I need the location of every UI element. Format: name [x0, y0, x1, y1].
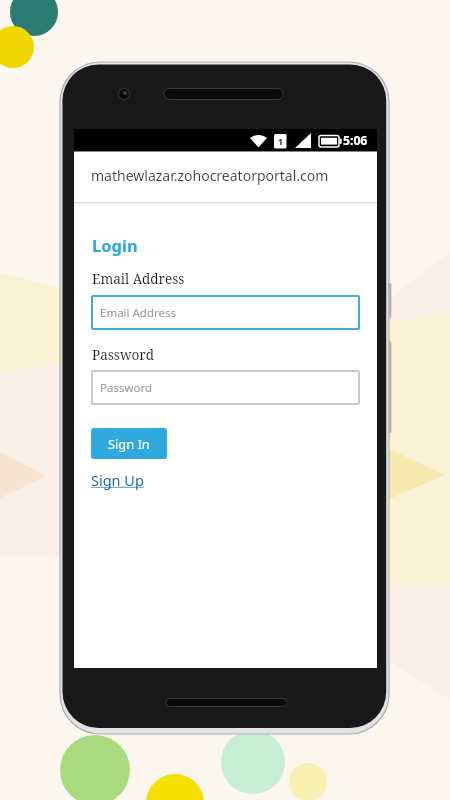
staticText: 5:06 — [343, 132, 368, 149]
button[interactable]: Sign In — [91, 428, 167, 459]
staticText: Sign In — [108, 435, 150, 452]
button[interactable]: Password — [91, 370, 360, 405]
staticText: Email Address — [92, 270, 185, 288]
staticText: Sign Up — [91, 470, 144, 490]
button[interactable]: Email Address — [91, 295, 360, 330]
staticText: Password — [100, 380, 153, 396]
button[interactable]: Sign Up — [91, 470, 144, 490]
staticText: mathewlazar.zohocreatorportal.com — [91, 166, 329, 185]
staticText: Password — [92, 346, 155, 364]
staticText: Email Address — [100, 305, 177, 321]
staticText: 1 — [274, 135, 287, 148]
staticText: Login — [92, 234, 138, 256]
